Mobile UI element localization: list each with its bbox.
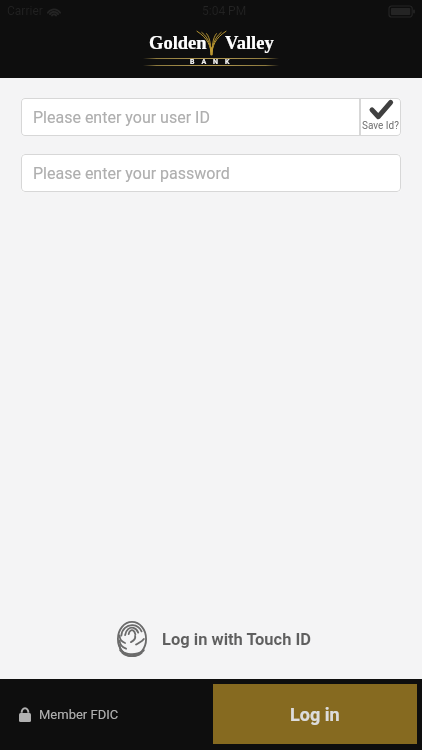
button[interactable]: Please enter your password: [21, 154, 401, 192]
other: Battery: [389, 6, 415, 17]
staticText: Log in with Touch ID: [162, 630, 312, 649]
button[interactable]: Member FDIC: [19, 707, 119, 722]
button[interactable]: Log in: [213, 684, 417, 744]
staticText: Save Id?: [362, 120, 399, 132]
staticText: Please enter your user ID: [33, 108, 210, 127]
other: Wifi: [47, 6, 61, 17]
staticText: Valley: [225, 33, 274, 53]
button[interactable]: Touch ID: [3, 608, 422, 670]
staticText: B A N K: [190, 58, 233, 66]
staticText: 5:04 PM: [202, 4, 247, 18]
other: Touch ID: [117, 621, 147, 657]
other: Save Id: [370, 100, 392, 119]
staticText: Log in: [290, 704, 340, 725]
staticText: Carrier: [7, 4, 43, 18]
staticText: Member FDIC: [39, 707, 119, 722]
button[interactable]: Please enter your user ID: [21, 98, 360, 136]
button[interactable]: Save Id: [360, 98, 401, 136]
staticText: Golden: [149, 33, 207, 53]
staticText: Please enter your password: [33, 164, 230, 183]
